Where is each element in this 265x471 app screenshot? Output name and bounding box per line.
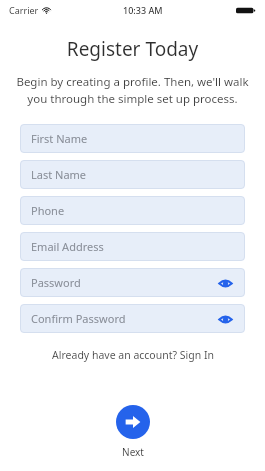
staticText: Confirm Password [31,311,216,326]
staticText: Phone [31,203,234,218]
button[interactable]: Show password [216,274,234,292]
staticText: Begin by creating a profile. Then, we'll… [14,74,251,107]
button[interactable]: Phone [20,196,245,225]
button[interactable]: Password [20,268,245,297]
staticText: Carrier [9,4,39,16]
staticText: Already have an account? Sign In [52,348,214,362]
button[interactable]: Already have an account? Sign In [0,346,265,364]
button[interactable]: Last Name [20,160,245,189]
staticText: Register Today [0,36,265,62]
button[interactable]: Show password [216,310,234,328]
staticText: 10:33 AM [123,4,163,16]
staticText: Next [122,445,144,459]
staticText: First Name [31,131,234,146]
button[interactable]: Email Address [20,232,245,261]
staticText: Last Name [31,167,234,182]
staticText: Password [31,275,216,290]
button[interactable]: Confirm Password [20,304,245,333]
button[interactable]: First Name [20,124,245,153]
staticText: Email Address [31,239,234,254]
button[interactable]: Next [116,405,150,439]
